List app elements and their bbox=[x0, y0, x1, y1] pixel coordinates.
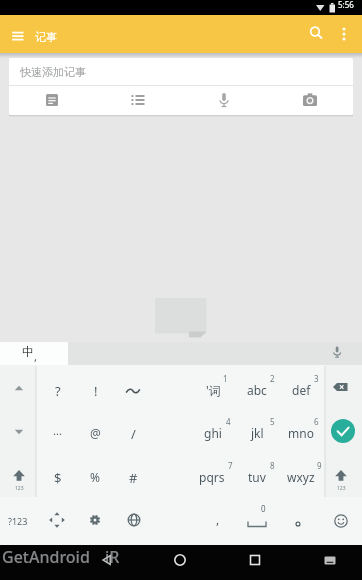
button[interactable]: 0 bbox=[249, 497, 277, 519]
button[interactable] bbox=[304, 21, 328, 45]
button[interactable]: $ bbox=[41, 464, 74, 491]
button[interactable] bbox=[334, 22, 354, 46]
button[interactable]: pqrs bbox=[178, 464, 246, 490]
button[interactable] bbox=[6, 24, 30, 48]
button[interactable]: def bbox=[273, 377, 329, 403]
staticText: 7 bbox=[228, 460, 233, 471]
staticText: 快速添加记事 bbox=[20, 65, 86, 79]
button[interactable] bbox=[317, 547, 343, 573]
staticText: abc bbox=[247, 382, 267, 398]
button[interactable]: ?123 bbox=[0, 509, 46, 532]
staticText: , bbox=[34, 349, 37, 364]
button[interactable] bbox=[94, 547, 120, 573]
button[interactable] bbox=[82, 507, 108, 533]
staticText: tuv bbox=[248, 469, 266, 485]
staticText: 3 bbox=[314, 373, 319, 384]
staticText: 123 bbox=[337, 485, 346, 492]
button[interactable] bbox=[120, 378, 146, 404]
button[interactable] bbox=[204, 86, 244, 114]
staticText: ... bbox=[53, 423, 62, 438]
button[interactable] bbox=[326, 374, 356, 404]
staticText: ?123 bbox=[8, 515, 28, 527]
staticText: '词 bbox=[206, 382, 221, 398]
button[interactable]: tuv bbox=[229, 464, 285, 490]
button[interactable] bbox=[32, 86, 72, 114]
button[interactable]: jkl bbox=[229, 420, 285, 446]
button[interactable] bbox=[290, 86, 330, 114]
button[interactable]: ! bbox=[79, 377, 112, 404]
staticText: 4 bbox=[226, 416, 231, 427]
staticText: iR bbox=[105, 546, 120, 568]
button[interactable] bbox=[326, 342, 348, 364]
button[interactable]: # bbox=[117, 464, 150, 491]
staticText: 记事 bbox=[35, 30, 57, 44]
button[interactable] bbox=[4, 373, 34, 403]
button[interactable] bbox=[328, 508, 354, 534]
button[interactable] bbox=[242, 518, 272, 534]
staticText: # bbox=[129, 469, 138, 487]
staticText: 0 bbox=[261, 503, 266, 514]
button[interactable] bbox=[242, 547, 268, 573]
staticText: jkl bbox=[251, 425, 264, 441]
staticText: 5 bbox=[270, 416, 275, 427]
button[interactable] bbox=[331, 419, 355, 443]
button[interactable]: 123 bbox=[4, 459, 34, 495]
staticText: wxyz bbox=[287, 469, 315, 485]
staticText: 2 bbox=[270, 373, 275, 384]
button[interactable]: 123 bbox=[326, 459, 356, 495]
staticText: mno bbox=[288, 425, 314, 441]
button[interactable]: ghi bbox=[185, 420, 241, 446]
staticText: ! bbox=[94, 382, 98, 400]
button[interactable] bbox=[167, 547, 193, 573]
button[interactable]: mno bbox=[273, 420, 329, 446]
staticText: def bbox=[292, 382, 311, 398]
staticText: 中 bbox=[22, 344, 34, 359]
staticText: $ bbox=[54, 469, 62, 487]
button[interactable]: wxyz bbox=[267, 464, 335, 490]
staticText: ? bbox=[55, 382, 61, 400]
staticText: , bbox=[216, 511, 220, 527]
button[interactable]: @ bbox=[79, 420, 111, 446]
staticText: / bbox=[131, 425, 136, 443]
staticText: % bbox=[90, 469, 100, 485]
button[interactable]: , bbox=[202, 506, 234, 532]
button[interactable] bbox=[44, 507, 70, 533]
staticText: 9 bbox=[317, 460, 322, 471]
button[interactable]: ... bbox=[31, 418, 84, 443]
button[interactable]: % bbox=[79, 464, 111, 490]
staticText: pqrs bbox=[199, 469, 225, 485]
button[interactable]: abc bbox=[229, 377, 285, 403]
staticText: ghi bbox=[204, 425, 222, 441]
button[interactable] bbox=[0, 342, 68, 365]
button[interactable] bbox=[121, 507, 147, 533]
button[interactable]: ? bbox=[41, 377, 74, 404]
button[interactable] bbox=[4, 417, 34, 447]
staticText: 123 bbox=[15, 485, 24, 492]
button[interactable]: / bbox=[117, 420, 150, 447]
staticText: 5:56 bbox=[338, 0, 354, 10]
staticText: @ bbox=[90, 425, 101, 441]
staticText: GetAndroid bbox=[2, 546, 90, 568]
button[interactable]: 快速添加记事 bbox=[9, 58, 353, 85]
staticText: 8 bbox=[270, 460, 275, 471]
staticText: 6 bbox=[314, 416, 319, 427]
staticText: 1 bbox=[223, 373, 228, 384]
button[interactable] bbox=[118, 86, 158, 114]
button[interactable] bbox=[288, 511, 308, 531]
button[interactable]: '词 bbox=[191, 377, 235, 403]
